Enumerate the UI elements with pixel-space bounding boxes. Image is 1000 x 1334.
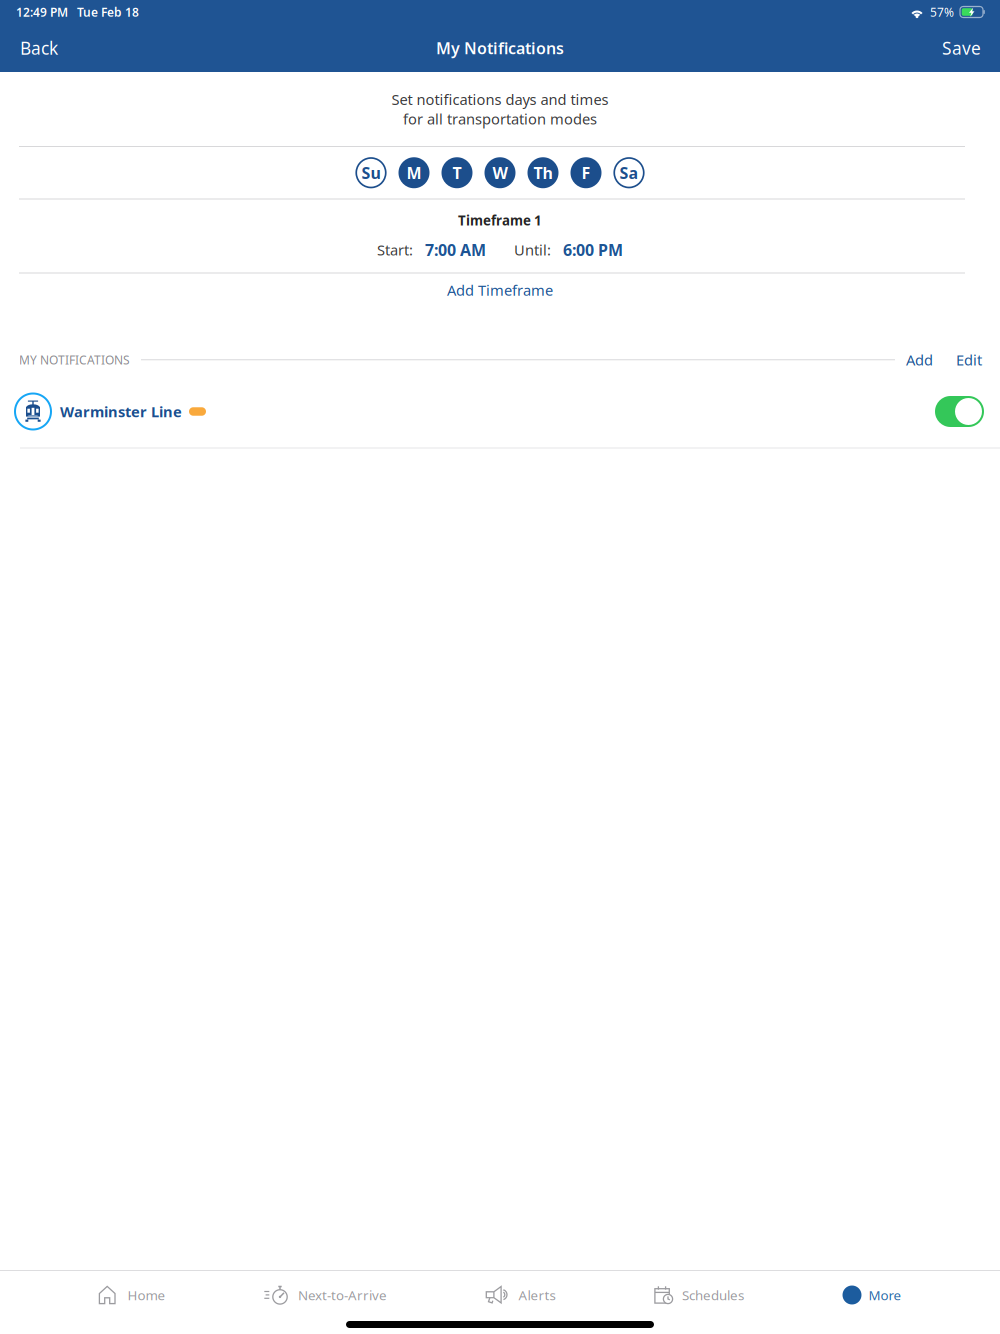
button[interactable]: Home bbox=[98, 1278, 165, 1312]
button[interactable]: Sa bbox=[613, 157, 644, 188]
staticText: My Notifications bbox=[436, 37, 564, 59]
button[interactable]: 7:00 AM bbox=[413, 239, 486, 260]
button[interactable]: Back bbox=[0, 24, 72, 72]
staticText: Back bbox=[20, 36, 58, 59]
staticText: 6:00 PM bbox=[563, 239, 623, 260]
button[interactable]: Schedules bbox=[654, 1278, 744, 1312]
staticText: 57% bbox=[924, 4, 960, 20]
button[interactable]: T bbox=[441, 157, 472, 188]
button[interactable]: Th bbox=[527, 157, 558, 188]
staticText: More bbox=[868, 1286, 901, 1304]
button[interactable]: F bbox=[570, 157, 601, 188]
staticText: MY NOTIFICATIONS bbox=[19, 352, 130, 368]
staticText: Start: bbox=[377, 240, 413, 260]
button[interactable]: W bbox=[484, 157, 515, 188]
staticText: W bbox=[492, 162, 507, 183]
staticText: 12:49 PM bbox=[16, 4, 68, 20]
button[interactable]: M bbox=[398, 157, 429, 188]
staticText: 7:00 AM bbox=[425, 239, 486, 260]
button[interactable]: 6:00 PM bbox=[551, 239, 623, 260]
staticText: Timeframe 1 bbox=[458, 211, 542, 229]
staticText: Home bbox=[127, 1286, 165, 1304]
staticText: Tue Feb 18 bbox=[68, 4, 139, 20]
button[interactable]: Su bbox=[355, 157, 386, 188]
staticText: Next-to-Arrive bbox=[298, 1286, 387, 1304]
staticText: T bbox=[452, 162, 461, 183]
button[interactable]: Warminster Line bbox=[0, 375, 1000, 447]
staticText: Save bbox=[942, 36, 981, 59]
button[interactable]: Save bbox=[928, 24, 1000, 72]
staticText: Add Timeframe bbox=[447, 280, 553, 300]
button[interactable]: Alerts bbox=[485, 1278, 555, 1312]
staticText: Alerts bbox=[518, 1286, 555, 1304]
staticText: for all transportation modes bbox=[403, 109, 597, 128]
staticText: Th bbox=[533, 162, 552, 183]
staticText: Schedules bbox=[682, 1286, 744, 1304]
staticText: Edit bbox=[956, 350, 982, 369]
button[interactable]: Warminster Line notifications bbox=[935, 396, 984, 427]
staticText: Warminster Line bbox=[60, 402, 182, 421]
staticText: Add bbox=[906, 350, 933, 369]
button[interactable]: Add Timeframe bbox=[0, 273, 1000, 306]
button[interactable]: Add bbox=[906, 350, 933, 369]
staticText: Set notifications days and times bbox=[391, 89, 608, 109]
staticText: F bbox=[581, 162, 590, 183]
staticText: Sa bbox=[619, 162, 638, 183]
staticText: M bbox=[406, 162, 421, 183]
button[interactable]: More bbox=[842, 1278, 901, 1312]
button[interactable]: Next-to-Arrive bbox=[264, 1278, 387, 1312]
button[interactable]: Edit bbox=[933, 350, 982, 369]
staticText: Until: bbox=[514, 240, 551, 260]
staticText: Su bbox=[361, 162, 380, 183]
